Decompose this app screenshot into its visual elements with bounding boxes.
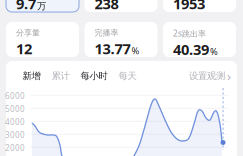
staticText: 13.77 bbox=[94, 39, 130, 58]
staticText: 2s跳出率 bbox=[173, 28, 206, 39]
staticText: 每小时 bbox=[80, 70, 107, 82]
staticText: 3000 bbox=[5, 130, 25, 140]
button[interactable]: 每天 bbox=[113, 70, 142, 82]
staticText: % bbox=[210, 45, 218, 58]
staticText: 238 bbox=[94, 0, 118, 13]
staticText: 完播率 bbox=[94, 28, 118, 38]
button[interactable]: 新增 bbox=[17, 70, 46, 82]
staticText: 4000 bbox=[5, 117, 25, 127]
staticText: 6000 bbox=[5, 91, 25, 101]
button[interactable]: 2s跳出率 bbox=[163, 22, 236, 57]
staticText: 5000 bbox=[5, 104, 25, 114]
button[interactable]: 点赞 bbox=[84, 0, 157, 12]
staticText: › bbox=[227, 67, 231, 85]
button[interactable]: 完播率 bbox=[84, 22, 157, 57]
staticText: 分享量 bbox=[16, 28, 40, 38]
button[interactable]: 累计 bbox=[46, 70, 75, 82]
staticText: 40.39 bbox=[173, 40, 209, 59]
button[interactable]: 设置观测 bbox=[189, 67, 237, 85]
staticText: 9.7 bbox=[16, 0, 36, 13]
staticText: 新增 bbox=[22, 70, 40, 82]
button[interactable]: 分享量 bbox=[6, 22, 79, 57]
button[interactable]: 评论 bbox=[163, 0, 236, 12]
staticText: % bbox=[131, 44, 139, 57]
staticText: 2000 bbox=[5, 143, 25, 153]
button[interactable]: 播放量 bbox=[6, 0, 79, 12]
button[interactable]: 每小时 bbox=[75, 70, 113, 82]
staticText: 12 bbox=[16, 39, 32, 58]
staticText: 万 bbox=[37, 0, 46, 12]
staticText: 每天 bbox=[118, 70, 136, 82]
staticText: 累计 bbox=[51, 70, 69, 82]
staticText: 1953 bbox=[173, 0, 205, 13]
staticText: 设置观测 bbox=[189, 70, 225, 82]
